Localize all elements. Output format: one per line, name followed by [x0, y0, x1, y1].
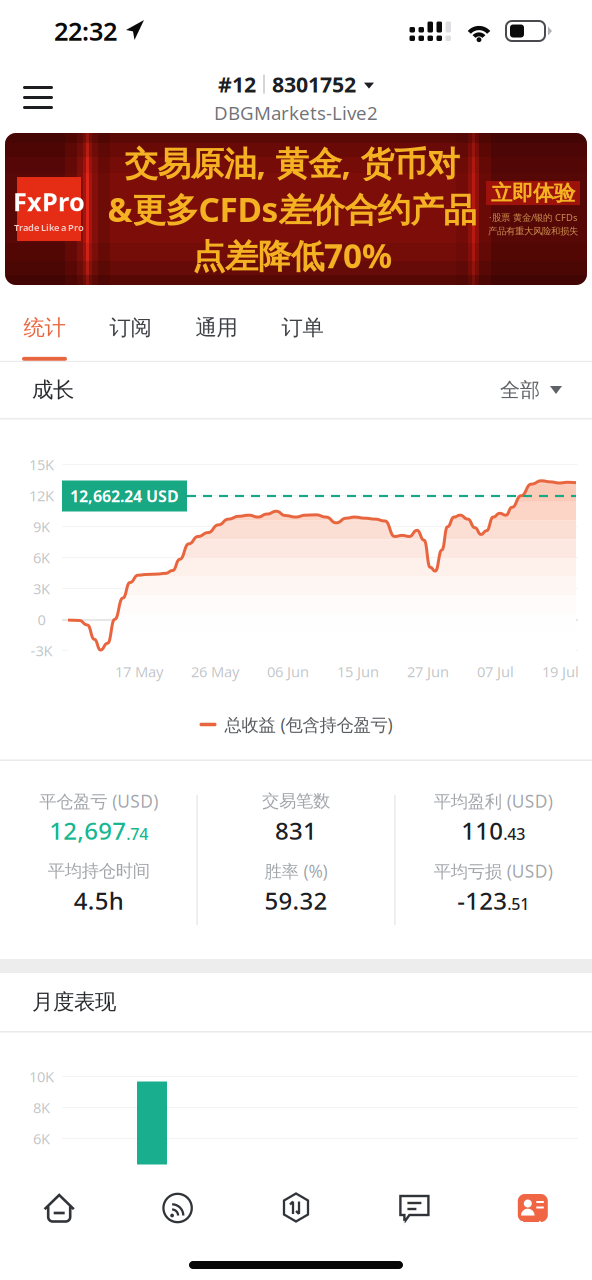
staticText: 6K	[33, 548, 50, 567]
staticText: 交易笔数	[262, 790, 330, 812]
staticText: 9K	[33, 517, 50, 536]
staticText: .51	[507, 893, 529, 914]
staticText: 胜率 (%)	[264, 859, 327, 882]
staticText: FxPro	[13, 184, 85, 218]
button[interactable]: 订单	[280, 315, 366, 361]
staticText: -123	[457, 885, 507, 916]
staticText: 4.5h	[74, 885, 124, 916]
button[interactable]: Messages	[355, 1166, 474, 1250]
staticText: 10K	[29, 1067, 54, 1086]
staticText: DBGMarkets-Live2	[214, 100, 378, 125]
staticText: 12,662.24 USD	[70, 485, 179, 507]
staticText: 12K	[29, 486, 54, 505]
staticText: -3K	[30, 641, 52, 660]
button[interactable]: Profile	[474, 1166, 592, 1250]
staticText: 总收益 (包含持仓盈亏)	[224, 713, 392, 736]
staticText: 0	[37, 610, 45, 629]
staticText: .74	[126, 823, 148, 844]
staticText: 06 Jun	[267, 662, 309, 681]
staticText: .43	[503, 823, 525, 844]
button[interactable]: Signals	[118, 1166, 237, 1250]
staticText: 订阅	[109, 315, 151, 341]
staticText: 26 May	[191, 662, 239, 681]
staticText: 6K	[33, 1129, 50, 1148]
staticText: 19 Jul	[542, 662, 579, 681]
staticText: 27 Jun	[407, 662, 449, 681]
button[interactable]: 全部	[500, 378, 562, 402]
button[interactable]: FxPro promotion	[0, 133, 592, 285]
staticText: 17 May	[115, 662, 163, 681]
staticText: 全部	[500, 378, 540, 402]
staticText: 平均亏损 (USD)	[434, 859, 553, 882]
button[interactable]: Home	[0, 1166, 118, 1250]
button[interactable]: Trade	[237, 1166, 355, 1250]
staticText: ♪@黄金外汇一李凯旋	[362, 1216, 580, 1246]
button[interactable]: #12	[214, 70, 378, 125]
button[interactable]: 统计	[22, 315, 108, 361]
staticText: 平仓盈亏 (USD)	[39, 789, 158, 812]
staticText: 订单	[281, 315, 323, 341]
button[interactable]: 通用	[194, 315, 280, 361]
staticText: 平均持仓时间	[48, 860, 150, 882]
staticText: 15K	[29, 455, 54, 474]
staticText: 59.32	[264, 885, 327, 916]
staticText: 15 Jun	[337, 662, 379, 681]
staticText: 交易原油, 黄金, 货币对	[124, 141, 459, 185]
staticText: ·股票 黄金/银的 CFDs	[489, 211, 577, 223]
staticText: Trade Like a Pro	[14, 221, 84, 233]
staticText: 12,697	[49, 815, 126, 846]
staticText: 统计	[23, 315, 65, 341]
staticText: 点差降低70%	[192, 233, 392, 277]
staticText: 平均盈利 (USD)	[434, 789, 553, 812]
staticText: #12	[218, 70, 256, 98]
button[interactable]: Menu	[7, 67, 69, 127]
staticText: 3K	[33, 579, 50, 598]
staticText: 月度表现	[32, 989, 116, 1015]
staticText: &更多CFDs差价合约产品	[107, 187, 476, 231]
staticText: 8301752	[272, 70, 356, 98]
staticText: 831	[275, 815, 317, 846]
staticText: 110	[461, 815, 503, 846]
staticText: 通用	[195, 315, 237, 341]
button[interactable]: 订阅	[108, 315, 194, 361]
staticText: 8K	[33, 1098, 50, 1117]
staticText: 成长	[32, 377, 74, 403]
staticText: 立即体验	[491, 180, 575, 206]
staticText: 07 Jul	[477, 662, 514, 681]
staticText: 产品有重大风险和损失	[488, 225, 578, 237]
staticText: 22:32	[54, 14, 117, 48]
